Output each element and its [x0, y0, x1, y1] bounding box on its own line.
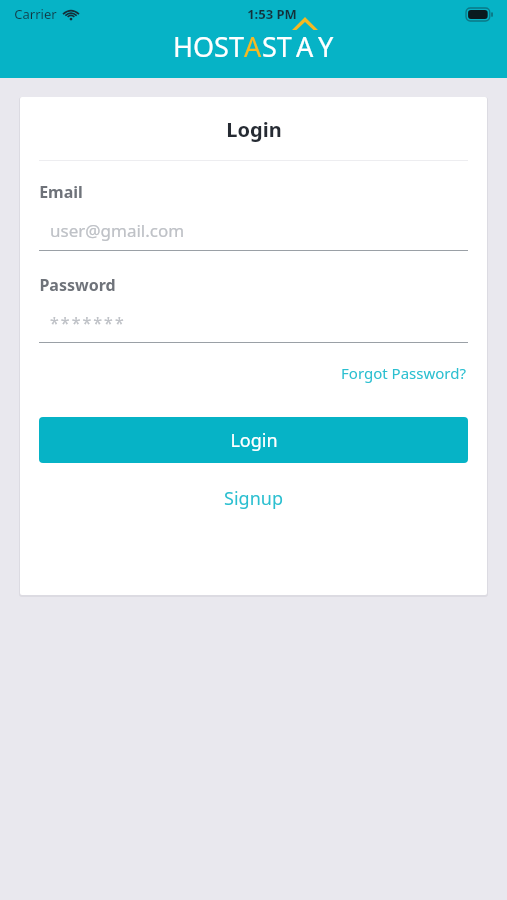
staticText: user@gmail.com [50, 219, 185, 242]
button[interactable]: Login [39, 417, 468, 463]
staticText: 1:53 PM [247, 5, 297, 23]
staticText: Password [39, 274, 116, 296]
staticText: Email [39, 181, 83, 203]
button[interactable]: Forgot Password? [339, 359, 468, 387]
button[interactable]: Signup [214, 481, 293, 516]
staticText: ******* [50, 312, 126, 334]
staticText: Forgot Password? [341, 363, 466, 383]
staticText: Carrier [14, 5, 57, 23]
staticText: ST [262, 28, 292, 65]
staticText: Y [318, 28, 334, 65]
button[interactable]: Email [39, 181, 468, 251]
button[interactable]: Password [39, 274, 468, 343]
staticText: Login [230, 428, 278, 453]
other: Wi-Fi signal [63, 8, 79, 20]
staticText: HOST [173, 28, 244, 65]
staticText: A [244, 28, 262, 65]
other: HostAStay logo [173, 28, 334, 65]
staticText: Signup [224, 486, 283, 511]
other: Battery full [466, 8, 493, 21]
staticText: A [296, 28, 314, 65]
staticText: Login [226, 116, 282, 143]
